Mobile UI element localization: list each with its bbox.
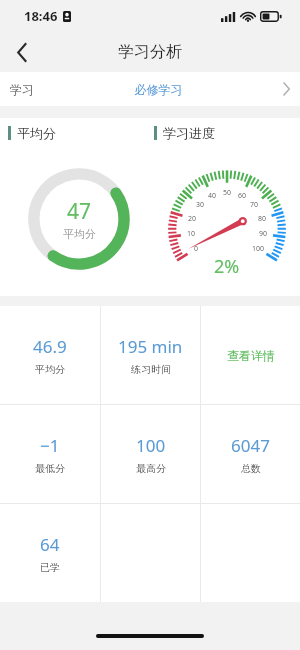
staticText: 学习分析 (118, 42, 182, 62)
staticText: 最高分 (136, 462, 166, 475)
staticText: 100 (249, 244, 267, 254)
staticText: 6047 (231, 434, 270, 457)
staticText: 0 (187, 244, 205, 254)
staticText: 必修学习 (34, 82, 283, 97)
button[interactable]: 学习 (0, 72, 300, 106)
button[interactable]: 195 min (101, 306, 200, 404)
staticText: 46.9 (33, 335, 67, 358)
button[interactable]: 64 (0, 504, 100, 602)
button[interactable]: 46.9 (0, 306, 100, 404)
staticText: 平均分 (35, 363, 65, 376)
staticText: 练习时间 (131, 363, 171, 376)
staticText: 60 (233, 191, 251, 201)
staticText: 64 (40, 533, 60, 556)
staticText: 30 (191, 200, 209, 210)
staticText: −1 (40, 434, 60, 457)
staticText: 195 min (118, 335, 183, 358)
staticText: 20 (183, 214, 201, 224)
staticText: 47 (67, 197, 92, 226)
staticText: 查看详情 (227, 348, 275, 363)
staticText: 40 (203, 191, 221, 201)
staticText: 学习 (10, 82, 34, 97)
staticText: 最低分 (35, 462, 65, 475)
staticText: 10 (182, 229, 200, 239)
staticText: 100 (136, 434, 166, 457)
staticText: 18:46 (24, 7, 58, 25)
button[interactable]: 查看详情 (201, 306, 300, 404)
staticText: 学习进度 (163, 125, 215, 141)
staticText: 50 (218, 188, 236, 198)
button[interactable]: 6047 (201, 405, 300, 503)
staticText: 90 (254, 229, 272, 239)
staticText: 已学 (40, 561, 60, 574)
button[interactable]: −1 (0, 405, 100, 503)
staticText: 总数 (241, 462, 261, 475)
button[interactable]: Back (0, 32, 44, 72)
staticText: 70 (245, 200, 263, 210)
button[interactable]: 100 (101, 405, 200, 503)
staticText: 80 (253, 214, 271, 224)
staticText: 2% (214, 254, 240, 279)
staticText: 平均分 (17, 125, 56, 141)
staticText: 平均分 (63, 227, 96, 241)
